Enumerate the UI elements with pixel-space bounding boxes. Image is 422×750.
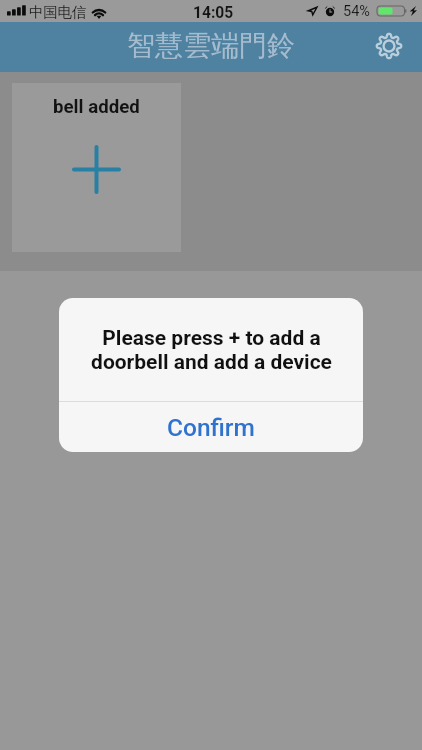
staticText: 智慧雲端門鈴 [127,28,295,63]
staticText: bell added [53,96,140,118]
staticText: Please press + to add a doorbell and add… [91,326,332,374]
staticText: 中国电信 [29,3,87,21]
button[interactable]: bell added [12,83,181,252]
staticText: 14:05 [193,4,234,22]
staticText: 54% [343,3,370,20]
button[interactable]: Confirm [59,402,363,452]
button[interactable]: Settings [367,24,411,68]
staticText: Confirm [167,413,255,442]
